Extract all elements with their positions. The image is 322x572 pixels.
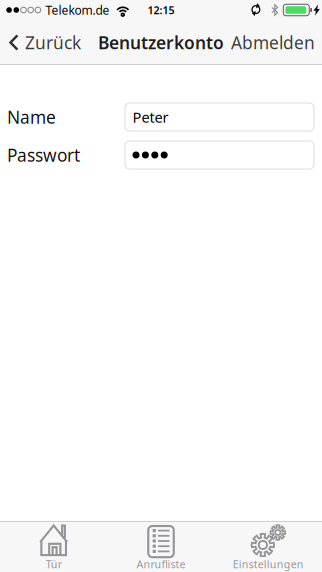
staticText: Passwort bbox=[7, 143, 80, 166]
button[interactable]: Tür bbox=[0, 521, 107, 572]
staticText: Peter bbox=[132, 107, 168, 127]
staticText: 12:15 bbox=[147, 3, 174, 17]
button[interactable]: Anrufliste bbox=[107, 521, 215, 572]
button[interactable]: Abmelden bbox=[225, 20, 322, 65]
staticText: Abmelden bbox=[231, 31, 315, 54]
button[interactable]: Einstellungen bbox=[215, 521, 322, 572]
staticText: Tür bbox=[46, 557, 62, 571]
staticText: Einstellungen bbox=[233, 557, 304, 571]
staticText: Benutzerkonto bbox=[98, 31, 224, 54]
staticText: Telekom.de bbox=[45, 2, 109, 18]
staticText: Name bbox=[7, 105, 56, 128]
button[interactable] bbox=[125, 141, 314, 169]
staticText: Anrufliste bbox=[136, 557, 185, 571]
button[interactable]: Zurück bbox=[0, 20, 87, 65]
button[interactable]: Peter bbox=[125, 103, 314, 131]
staticText: Zurück bbox=[25, 31, 81, 54]
